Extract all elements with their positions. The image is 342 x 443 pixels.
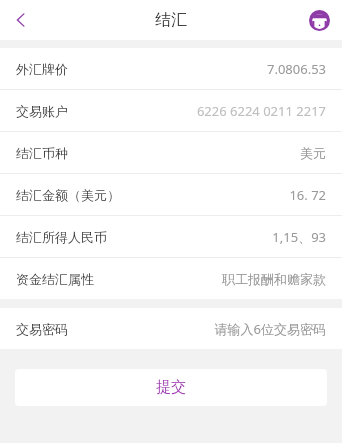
staticText: 请输入6位交易密码: [76, 320, 326, 338]
staticText: 6226 6224 0211 2217: [76, 102, 326, 120]
button[interactable]: 结汇币种: [0, 132, 342, 174]
staticText: 1,15、93: [115, 228, 326, 246]
button[interactable]: 交易密码: [0, 308, 342, 349]
staticText: 外汇牌价: [16, 61, 68, 77]
staticText: 职工报酬和赡家款: [102, 271, 326, 287]
button[interactable]: Customer service: [306, 7, 332, 33]
button[interactable]: 结汇金额（美元）: [0, 174, 342, 216]
button[interactable]: 提交: [15, 369, 327, 406]
button[interactable]: 资金结汇属性: [0, 258, 342, 299]
button[interactable]: Back: [6, 5, 36, 35]
staticText: 美元: [76, 145, 326, 161]
button[interactable]: 交易账户: [0, 90, 342, 132]
staticText: 交易账户: [16, 103, 68, 119]
staticText: 结汇币种: [16, 145, 68, 161]
staticText: 16. 72: [128, 186, 326, 204]
staticText: 结汇金额（美元）: [16, 187, 120, 203]
staticText: 结汇: [155, 10, 187, 30]
staticText: 结汇所得人民币: [16, 229, 107, 245]
button[interactable]: 外汇牌价: [0, 48, 342, 90]
button[interactable]: 结汇所得人民币: [0, 216, 342, 258]
staticText: 7.0806.53: [76, 60, 326, 78]
staticText: 交易密码: [16, 321, 68, 337]
staticText: 提交: [156, 378, 186, 397]
staticText: 资金结汇属性: [16, 271, 94, 287]
